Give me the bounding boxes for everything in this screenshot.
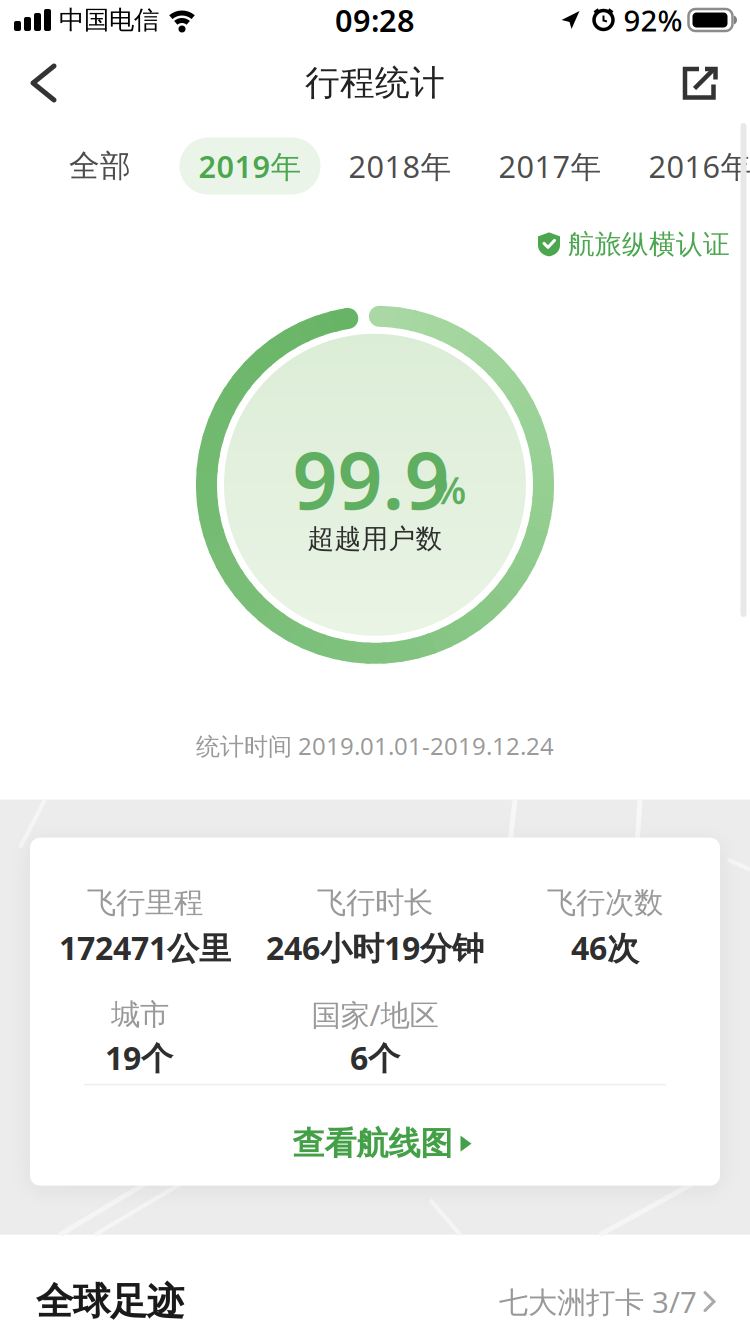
staticText: 09:28 (335, 0, 415, 40)
staticText: 超越用户数 (307, 522, 442, 555)
button[interactable]: 2017年 (475, 136, 625, 196)
staticText: 246小时19分钟 (266, 926, 484, 969)
staticText: 99.9 (292, 426, 449, 531)
staticText: 七大洲打卡 3/7 (499, 1282, 697, 1321)
staticText: 全部 (69, 147, 131, 185)
staticText: 飞行次数 (547, 885, 663, 921)
staticText: % (433, 465, 466, 515)
button[interactable]: 七大洲打卡 3/7 (499, 1282, 716, 1321)
staticText: 92% (623, 0, 682, 39)
button[interactable]: 查看航线图 (292, 1124, 471, 1163)
staticText: 查看航线图 (292, 1124, 452, 1163)
staticText: 46次 (571, 926, 639, 969)
staticText: 中国电信 (59, 4, 159, 35)
staticText: 飞行里程 (87, 885, 203, 921)
button[interactable]: 2019年 (179, 137, 320, 194)
button[interactable]: 全部 (25, 136, 175, 196)
button[interactable]: Back (0, 64, 58, 102)
staticText: 2016年 (648, 146, 750, 186)
staticText: 2019年 (198, 146, 301, 186)
staticText: 行程统计 (305, 62, 445, 104)
staticText: 飞行时长 (317, 885, 433, 921)
staticText: 统计时间 2019.01.01-2019.12.24 (196, 730, 554, 762)
button[interactable]: Share (680, 64, 750, 101)
staticText: 全球足迹 (36, 1279, 184, 1324)
staticText: 2017年 (498, 146, 601, 186)
button[interactable]: 2018年 (325, 136, 475, 196)
staticText: 2018年 (348, 146, 451, 186)
staticText: 航旅纵横认证 (568, 228, 730, 261)
staticText: 国家/地区 (311, 995, 438, 1034)
staticText: 172471公里 (59, 926, 231, 969)
button[interactable]: 2016年 (625, 136, 750, 196)
staticText: 城市 (111, 997, 169, 1033)
staticText: 6个 (350, 1036, 400, 1079)
staticText: 19个 (105, 1036, 173, 1079)
